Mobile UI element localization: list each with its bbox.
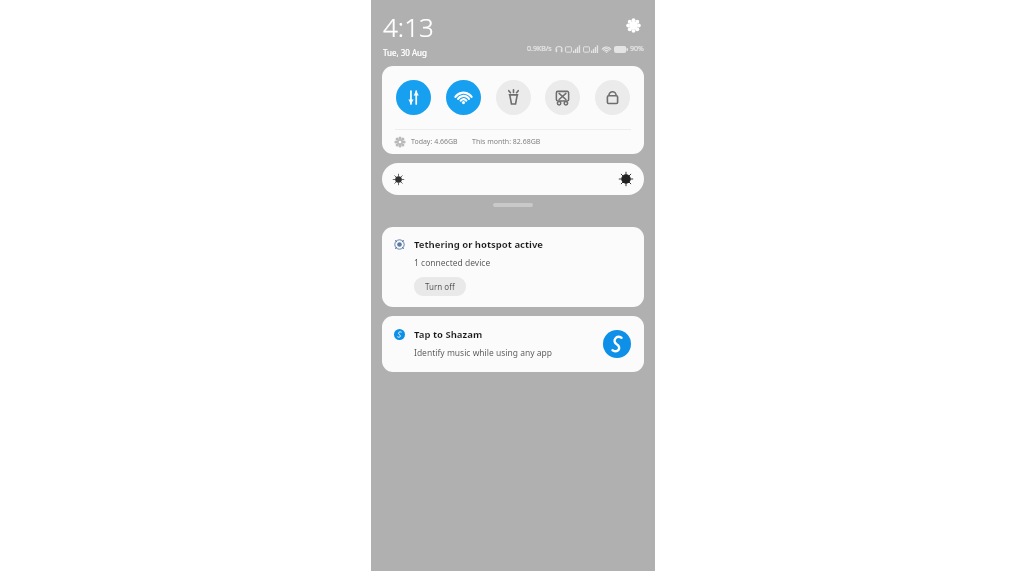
staticText: 4:13: [383, 9, 434, 44]
staticText: 0.9KB/s: [527, 44, 552, 54]
button[interactable]: Wi-Fi: [446, 80, 481, 115]
staticText: 90%: [630, 44, 644, 54]
button[interactable]: Screenshot: [545, 80, 580, 115]
staticText: Identify music while using any app: [414, 347, 552, 359]
button[interactable]: Mobile data: [396, 80, 431, 115]
staticText: Tap to Shazam: [414, 328, 483, 341]
staticText: Today: 4.66GB: [411, 137, 458, 147]
staticText: Turn off: [425, 281, 455, 292]
button[interactable]: Tethering or hotspot active: [382, 227, 644, 307]
staticText: 1 connected device: [414, 257, 491, 269]
staticText: This month: 82.68GB: [472, 137, 541, 147]
staticText: Tethering or hotspot active: [414, 238, 544, 251]
button[interactable]: Tap to Shazam: [382, 316, 644, 372]
staticText: Tue, 30 Aug: [383, 47, 427, 58]
button[interactable]: Flashlight: [496, 80, 531, 115]
button[interactable]: Settings: [622, 14, 644, 36]
button[interactable]: Today: 4.66GB: [395, 130, 644, 154]
button[interactable]: Turn off: [414, 277, 466, 296]
button[interactable]: Brightness: [382, 163, 644, 195]
button[interactable]: Lock: [595, 80, 630, 115]
